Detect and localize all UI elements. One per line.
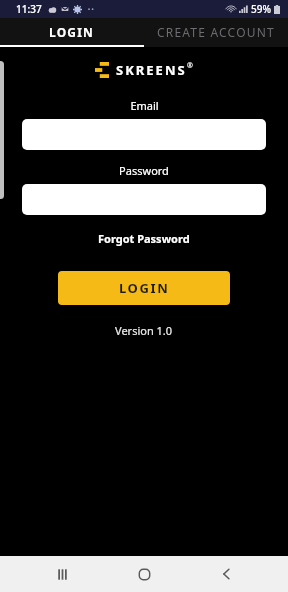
staticText: 11:37 [16,2,42,16]
staticText: CREATE ACCOUNT [157,24,275,40]
staticText: Version 1.0 [115,323,173,338]
staticText: LOGIN [49,24,95,40]
staticText: Password [119,163,169,178]
staticText: LOGIN [119,279,170,297]
button[interactable]: Home [124,556,164,592]
button[interactable] [22,184,266,215]
staticText: 59% [251,2,271,16]
button[interactable]: Back [206,556,246,592]
button[interactable]: CREATE ACCOUNT [144,18,288,45]
button[interactable]: LOGIN [58,271,230,305]
button[interactable]: Recent apps [42,556,82,592]
staticText: SKREENS [116,61,187,79]
staticText: ® [187,61,193,71]
button[interactable]: LOGIN [0,18,144,45]
button[interactable] [22,119,266,150]
staticText: Email [130,98,159,113]
button[interactable]: Forgot Password [92,228,196,249]
